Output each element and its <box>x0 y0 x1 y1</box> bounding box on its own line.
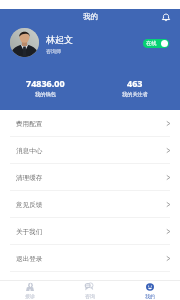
staticText: 我的 <box>83 12 98 21</box>
button[interactable]: 在线 <box>143 39 169 48</box>
staticText: 退出登录 <box>16 255 43 263</box>
button[interactable]: 费用配置 <box>0 110 180 137</box>
staticText: 林起文 <box>46 34 73 45</box>
staticText: 463 <box>127 77 143 89</box>
button[interactable] <box>10 28 39 57</box>
button[interactable]: 咨询 <box>60 281 120 299</box>
staticText: 我的钱包 <box>35 91 56 98</box>
button[interactable]: 74836.00 <box>0 77 90 98</box>
staticText: 意见反馈 <box>16 201 43 209</box>
staticText: 咨询 <box>85 293 95 299</box>
staticText: 74836.00 <box>26 77 65 89</box>
button[interactable]: 接诊 <box>0 281 60 299</box>
staticText: 消息中心 <box>16 147 43 155</box>
staticText: 清理缓存 <box>16 174 43 182</box>
button[interactable]: 退出登录 <box>0 245 180 272</box>
staticText: 我的关注者 <box>122 91 148 98</box>
button[interactable]: 关于我们 <box>0 218 180 245</box>
staticText: 在线 <box>146 40 157 47</box>
staticText: 关于我们 <box>16 228 43 236</box>
button[interactable]: Notifications <box>159 10 172 23</box>
button[interactable]: 我的 <box>120 281 180 299</box>
staticText: 接诊 <box>25 293 35 299</box>
staticText: 我的 <box>145 293 155 299</box>
staticText: 咨询师 <box>46 48 61 54</box>
button[interactable]: 清理缓存 <box>0 164 180 191</box>
staticText: 费用配置 <box>16 120 43 128</box>
button[interactable]: 消息中心 <box>0 137 180 164</box>
button[interactable]: 463 <box>90 77 180 98</box>
button[interactable]: 意见反馈 <box>0 191 180 218</box>
